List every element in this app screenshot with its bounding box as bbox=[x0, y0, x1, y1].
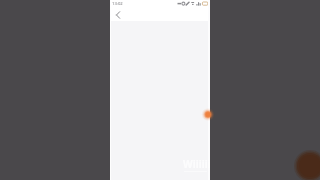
staticText: 13:02 bbox=[112, 1, 123, 7]
staticText: Wiiiiii bbox=[183, 157, 211, 171]
button[interactable]: Back bbox=[113, 10, 123, 20]
button[interactable]: Add bbox=[198, 105, 216, 123]
